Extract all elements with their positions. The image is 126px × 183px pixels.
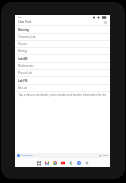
- staticText: Morning: [18, 28, 30, 32]
- button[interactable]: Physics Lab: [15, 69, 110, 76]
- staticText: Bio Lab: [18, 86, 28, 90]
- staticText: schedule.pdf: [21, 154, 33, 157]
- staticText: Lab AM: [18, 57, 28, 61]
- staticText: Chemistry Lab: [18, 35, 36, 39]
- staticText: Class Time: [18, 20, 32, 24]
- staticText: Physics: [18, 42, 27, 46]
- button[interactable]: Physics: [15, 40, 110, 47]
- staticText: Biology: [18, 49, 28, 53]
- staticText: Mathematics: [18, 64, 34, 68]
- staticText: 9:41: [18, 16, 23, 19]
- staticText: Tap a class to see details, room number …: [17, 93, 108, 97]
- button[interactable]: Apps: [37, 161, 41, 165]
- button[interactable]: Account: [104, 21, 107, 24]
- staticText: Delete: [102, 154, 108, 157]
- button[interactable]: Drive: [69, 161, 73, 165]
- button[interactable]: Search: [85, 161, 89, 165]
- staticText: Physics Lab: [18, 71, 32, 75]
- button[interactable]: Chemistry Lab: [15, 33, 110, 40]
- button[interactable]: Download: [17, 154, 20, 157]
- button[interactable]: Chrome: [53, 161, 57, 165]
- button[interactable]: Maps: [77, 161, 81, 165]
- button[interactable]: Gmail: [45, 161, 49, 165]
- staticText: Lab PM: [18, 79, 28, 83]
- button[interactable]: Biology: [15, 47, 110, 54]
- button[interactable]: Mathematics: [15, 62, 110, 69]
- button[interactable]: YouTube: [61, 161, 65, 165]
- button[interactable]: Bio Lab: [15, 84, 110, 91]
